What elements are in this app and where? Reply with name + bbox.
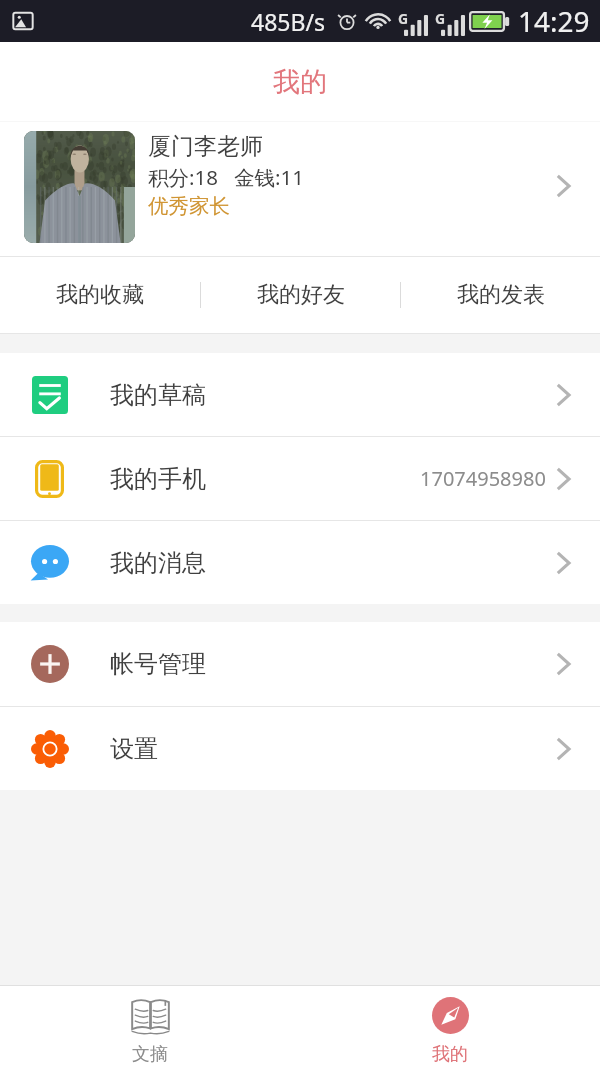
staticText: 积分:18 金钱:11 <box>148 163 304 191</box>
staticText: 17074958980 <box>420 465 546 492</box>
staticText: 文摘 <box>132 1043 168 1066</box>
staticText: 我的消息 <box>110 548 206 578</box>
button[interactable]: 我的草稿 <box>0 353 600 436</box>
staticText: 485B/s <box>251 6 325 37</box>
button[interactable]: 厦门李老师 <box>0 122 600 256</box>
staticText: 设置 <box>110 734 158 764</box>
staticText: 我的 <box>432 1043 468 1066</box>
staticText: G <box>435 9 446 28</box>
staticText: 我的收藏 <box>56 281 144 309</box>
button[interactable]: 我的手机 <box>0 437 600 520</box>
button[interactable]: 我的消息 <box>0 521 600 604</box>
staticText: 我的草稿 <box>110 380 206 410</box>
staticText: 帐号管理 <box>110 649 206 679</box>
staticText: 我的 <box>273 65 327 99</box>
button[interactable]: 我的 <box>300 986 600 1067</box>
button[interactable]: 文摘 <box>0 986 300 1067</box>
button[interactable]: 我的发表 <box>401 257 600 333</box>
staticText: 14:29 <box>518 2 590 40</box>
staticText: G <box>398 9 409 28</box>
button[interactable]: 帐号管理 <box>0 622 600 706</box>
staticText: 优秀家长 <box>148 193 230 219</box>
button[interactable]: 我的好友 <box>201 257 400 333</box>
staticText: 我的发表 <box>457 281 545 309</box>
staticText: 厦门李老师 <box>148 132 263 161</box>
button[interactable]: 设置 <box>0 707 600 790</box>
staticText: 我的好友 <box>257 281 345 309</box>
staticText: 我的手机 <box>110 464 206 494</box>
button[interactable]: 我的收藏 <box>0 257 200 333</box>
